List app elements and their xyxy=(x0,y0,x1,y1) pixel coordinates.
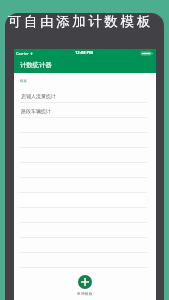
staticText: 路段车辆统计 xyxy=(21,108,51,114)
staticText: 店铺人流量统计 xyxy=(21,93,56,99)
button[interactable] xyxy=(14,193,156,208)
staticText: 可自由添加计数模板 xyxy=(8,13,153,30)
button[interactable]: 路段车辆统计 xyxy=(14,103,156,118)
button[interactable] xyxy=(14,163,156,178)
button[interactable]: 店铺人流量统计 xyxy=(14,88,156,103)
button[interactable] xyxy=(14,178,156,193)
button[interactable] xyxy=(14,148,156,163)
button[interactable] xyxy=(14,133,156,148)
button[interactable] xyxy=(14,118,156,133)
staticText: 模板 xyxy=(20,79,27,83)
button[interactable] xyxy=(14,253,156,268)
button[interactable] xyxy=(14,223,156,238)
staticText: Carrier xyxy=(16,51,29,56)
staticText: 新增模板 xyxy=(77,291,93,296)
button[interactable] xyxy=(14,208,156,223)
staticText: 计数统计器 xyxy=(20,61,52,69)
button[interactable]: 计数统计器 xyxy=(14,57,156,73)
button[interactable] xyxy=(14,238,156,253)
staticText: 12:08 PM xyxy=(75,50,93,56)
button[interactable]: Add template xyxy=(78,275,92,289)
